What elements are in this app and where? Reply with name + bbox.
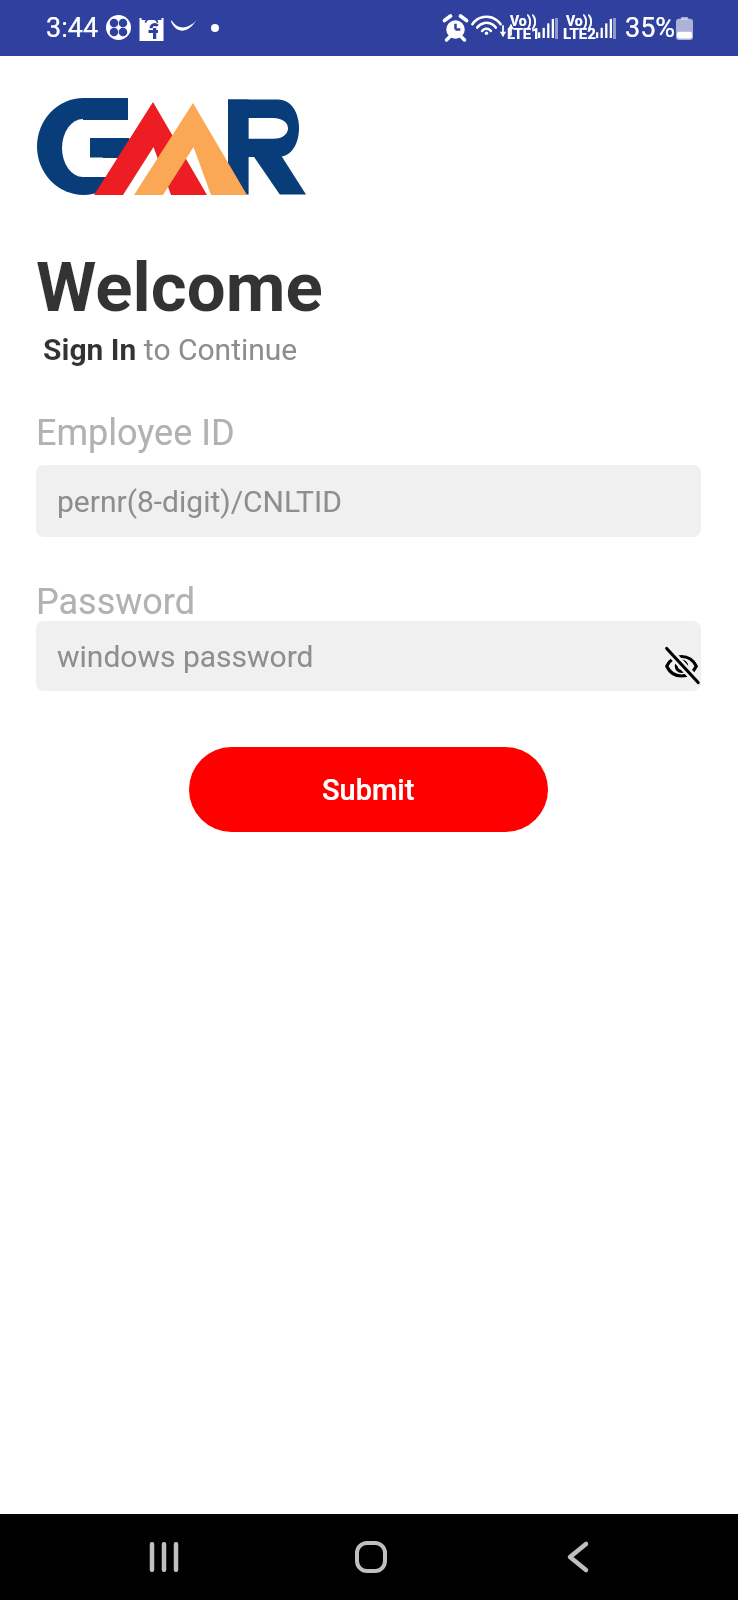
staticText: Sign In to Continue bbox=[43, 332, 298, 367]
button[interactable]: Back bbox=[538, 1527, 618, 1587]
staticText: Password bbox=[36, 581, 196, 623]
staticText: pernr(8-digit)/CNLTID bbox=[57, 484, 342, 519]
button[interactable]: windows password bbox=[36, 621, 701, 691]
button[interactable]: Home bbox=[331, 1527, 411, 1587]
button[interactable]: Submit bbox=[189, 747, 548, 832]
staticText: 3:44 bbox=[46, 12, 99, 44]
staticText: windows password bbox=[57, 639, 314, 674]
button[interactable]: pernr(8-digit)/CNLTID bbox=[36, 465, 701, 537]
button[interactable]: Show password bbox=[662, 646, 700, 684]
button[interactable]: Recent apps bbox=[124, 1527, 204, 1587]
staticText: Submit bbox=[322, 773, 415, 807]
staticText: Employee ID bbox=[36, 412, 235, 454]
staticText: Vo)) bbox=[510, 13, 537, 29]
staticText: LTE2 bbox=[563, 25, 596, 43]
staticText: 35% bbox=[625, 12, 676, 44]
staticText: Welcome bbox=[36, 247, 323, 328]
staticText: Vo)) bbox=[566, 13, 593, 29]
staticText: LTE1 bbox=[507, 25, 540, 43]
